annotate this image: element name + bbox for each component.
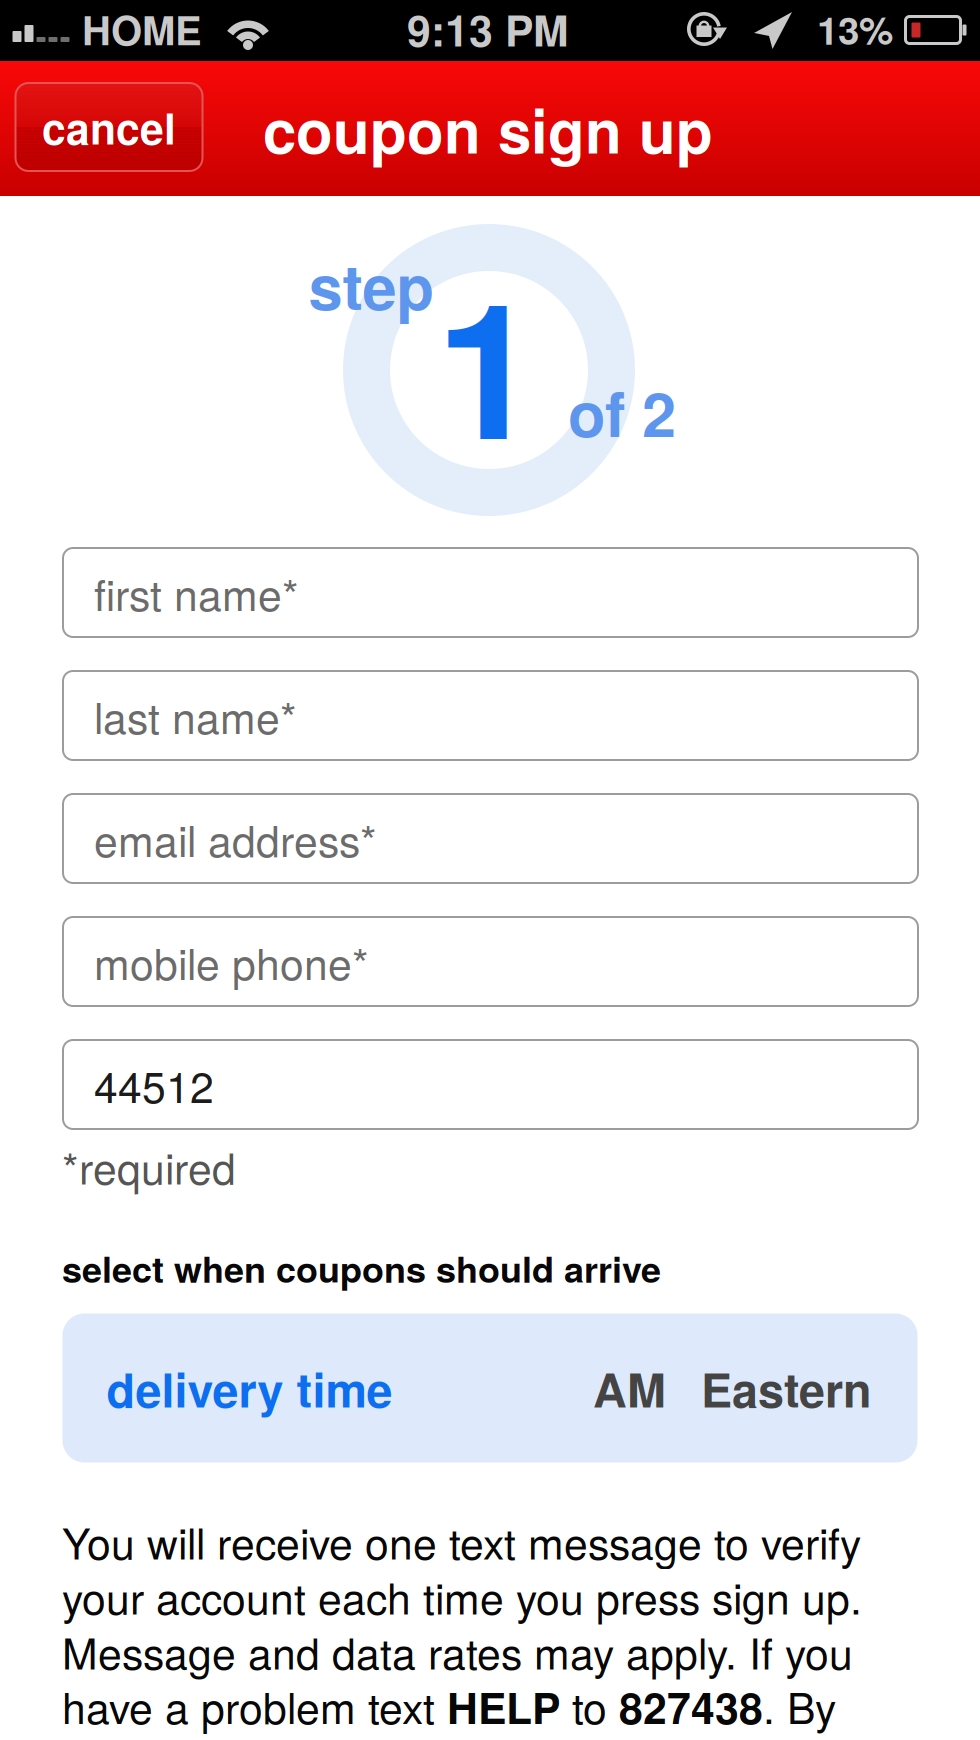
staticText: AM xyxy=(593,1355,666,1422)
button[interactable]: delivery time xyxy=(62,1313,917,1462)
staticText: coupon sign up xyxy=(263,86,713,172)
staticText: first name* xyxy=(94,562,299,623)
button[interactable]: email address* xyxy=(63,794,918,883)
button[interactable]: last name* xyxy=(63,671,918,760)
staticText: cancel xyxy=(42,96,176,158)
button[interactable]: 44512 xyxy=(63,1040,918,1129)
staticText: email address* xyxy=(94,808,377,869)
staticText: Eastern xyxy=(701,1355,872,1422)
staticText: have a problem text HELP to 827438. By xyxy=(62,1676,836,1736)
staticText: You will receive one text message to ver… xyxy=(62,1510,861,1572)
staticText: 44512 xyxy=(94,1054,214,1115)
staticText: step xyxy=(308,241,433,329)
staticText: your account each time you press sign up… xyxy=(62,1565,862,1627)
staticText: 9:13 PM xyxy=(407,0,569,60)
staticText: HOME xyxy=(82,0,202,58)
staticText: Message and data rates may apply. If you xyxy=(62,1620,853,1682)
button[interactable]: mobile phone* xyxy=(63,917,918,1006)
staticText: mobile phone* xyxy=(94,931,369,992)
staticText: last name* xyxy=(94,685,297,746)
staticText: *required xyxy=(62,1135,236,1197)
staticText: delivery time xyxy=(106,1355,392,1422)
staticText: of 2 xyxy=(568,368,676,456)
staticText: select when coupons should arrive xyxy=(62,1242,661,1294)
staticText: 1 xyxy=(435,227,540,497)
button[interactable]: first name* xyxy=(63,548,918,637)
staticText: 13% xyxy=(817,1,893,57)
button[interactable]: cancel xyxy=(15,83,202,171)
